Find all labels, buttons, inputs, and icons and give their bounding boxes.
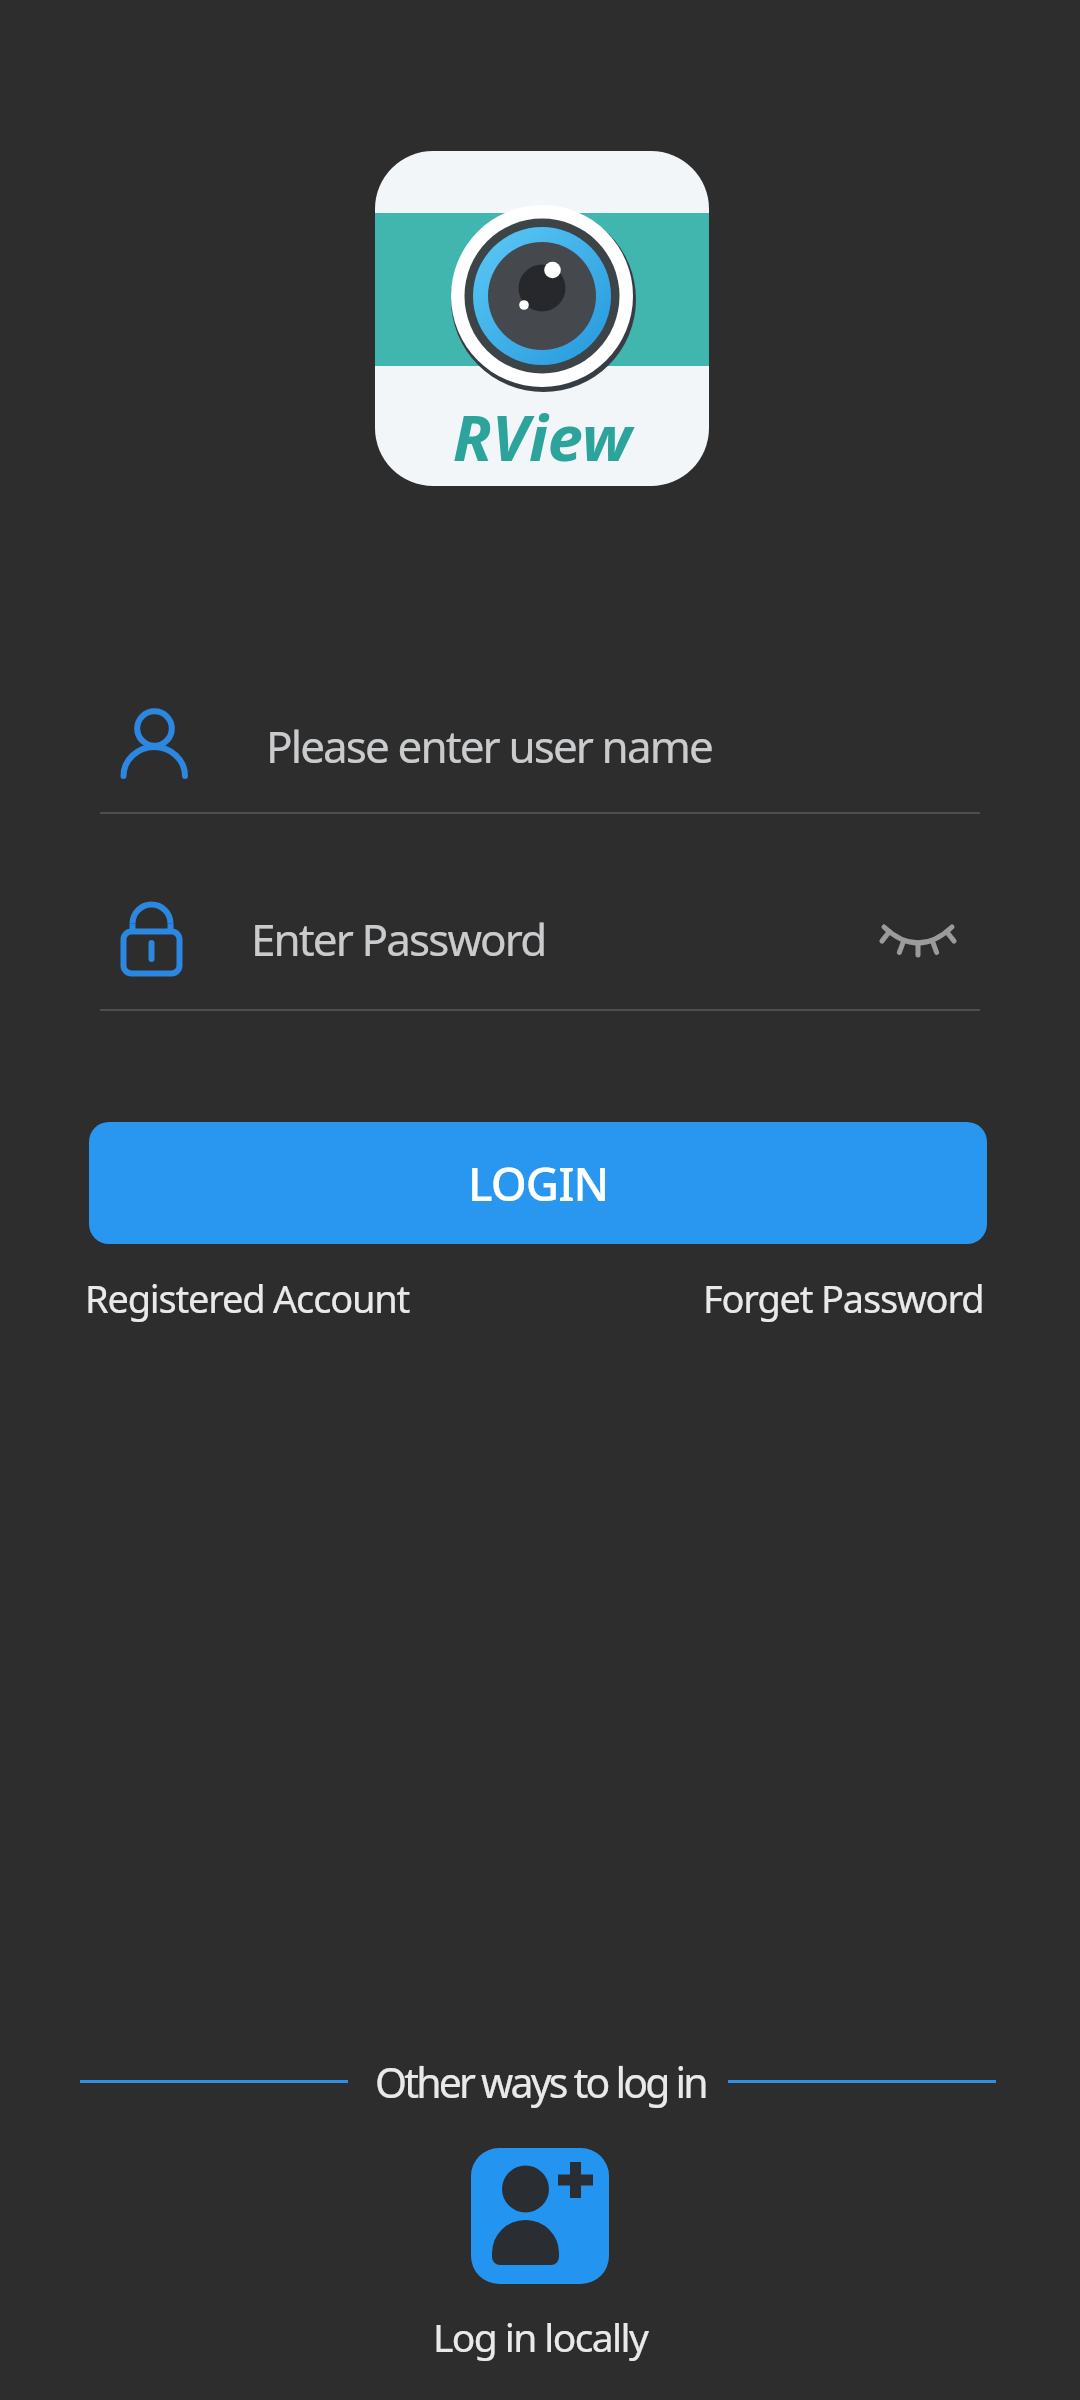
staticText: Forget Password (703, 1272, 984, 1324)
staticText: Log in locally (433, 2310, 648, 2363)
button[interactable] (471, 2148, 609, 2284)
button[interactable] (100, 880, 980, 1011)
button[interactable] (876, 915, 960, 963)
staticText: Registered Account (85, 1272, 410, 1324)
staticText: Other ways to log in (375, 2054, 706, 2110)
button[interactable]: Registered Account (85, 1272, 410, 1324)
staticText: RView (375, 394, 709, 480)
button[interactable]: Forget Password (624, 1272, 984, 1324)
button[interactable] (100, 683, 980, 814)
staticText: Please enter user name (266, 716, 712, 776)
staticText: LOGIN (468, 1152, 609, 1215)
staticText: Enter Password (251, 909, 546, 969)
button[interactable]: LOGIN (89, 1122, 987, 1244)
